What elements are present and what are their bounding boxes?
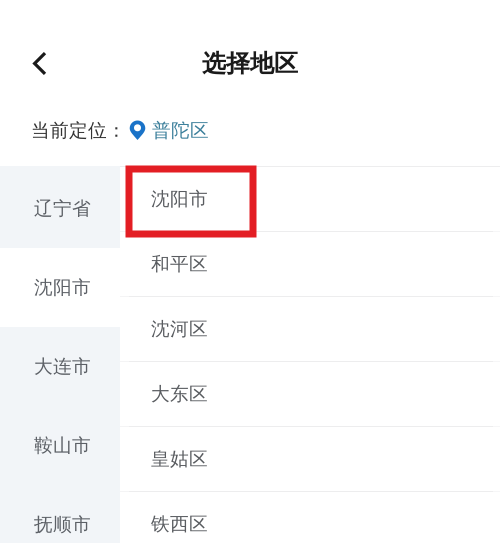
- staticText: 沈阳市: [151, 187, 208, 211]
- staticText: 沈河区: [151, 317, 208, 341]
- staticText: 选择地区: [202, 48, 298, 79]
- staticText: 辽宁省: [34, 197, 91, 220]
- staticText: 大东区: [151, 382, 208, 406]
- button[interactable]: 和平区: [120, 232, 500, 297]
- staticText: 大连市: [34, 355, 91, 378]
- button[interactable]: Back: [17, 40, 63, 86]
- staticText: 皇姑区: [151, 447, 208, 471]
- staticText: 鞍山市: [34, 434, 91, 457]
- button[interactable]: 沈阳市: [120, 167, 500, 232]
- staticText: 沈阳市: [34, 276, 91, 299]
- staticText: 抚顺市: [34, 513, 91, 536]
- button[interactable]: 沈河区: [120, 297, 500, 362]
- staticText: 普陀区: [152, 119, 209, 142]
- button[interactable]: 大连市: [0, 327, 120, 406]
- button[interactable]: 大东区: [120, 362, 500, 427]
- button[interactable]: 皇姑区: [120, 427, 500, 492]
- button[interactable]: 铁西区: [120, 492, 500, 543]
- button[interactable]: 鞍山市: [0, 406, 120, 485]
- button[interactable]: 辽宁省: [0, 169, 120, 248]
- button[interactable]: 抚顺市: [0, 485, 120, 543]
- staticText: 和平区: [151, 252, 208, 276]
- staticText: 铁西区: [151, 512, 208, 536]
- button[interactable]: 沈阳市: [0, 248, 120, 327]
- staticText: 当前定位：: [31, 119, 126, 142]
